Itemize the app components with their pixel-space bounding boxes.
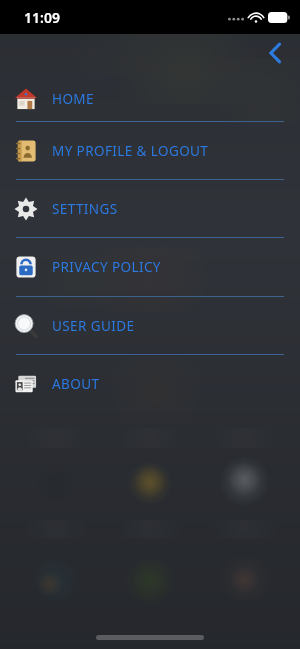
button[interactable]: PRIVACY POLICY [0, 238, 300, 296]
button[interactable]: ABOUT [0, 355, 300, 412]
staticText: USER GUIDE [52, 317, 135, 335]
staticText: PRIVACY POLICY [52, 258, 161, 276]
staticText: SETTINGS [52, 200, 118, 218]
button[interactable]: USER GUIDE [0, 297, 300, 354]
button[interactable]: HOME [0, 76, 300, 121]
staticText: ABOUT [52, 375, 100, 393]
staticText: MY PROFILE & LOGOUT [52, 142, 209, 160]
button[interactable]: Back [258, 36, 292, 70]
button[interactable]: SETTINGS [0, 180, 300, 237]
button[interactable]: MY PROFILE & LOGOUT [0, 122, 300, 179]
staticText: HOME [52, 90, 94, 108]
staticText: 11:09 [24, 8, 60, 27]
